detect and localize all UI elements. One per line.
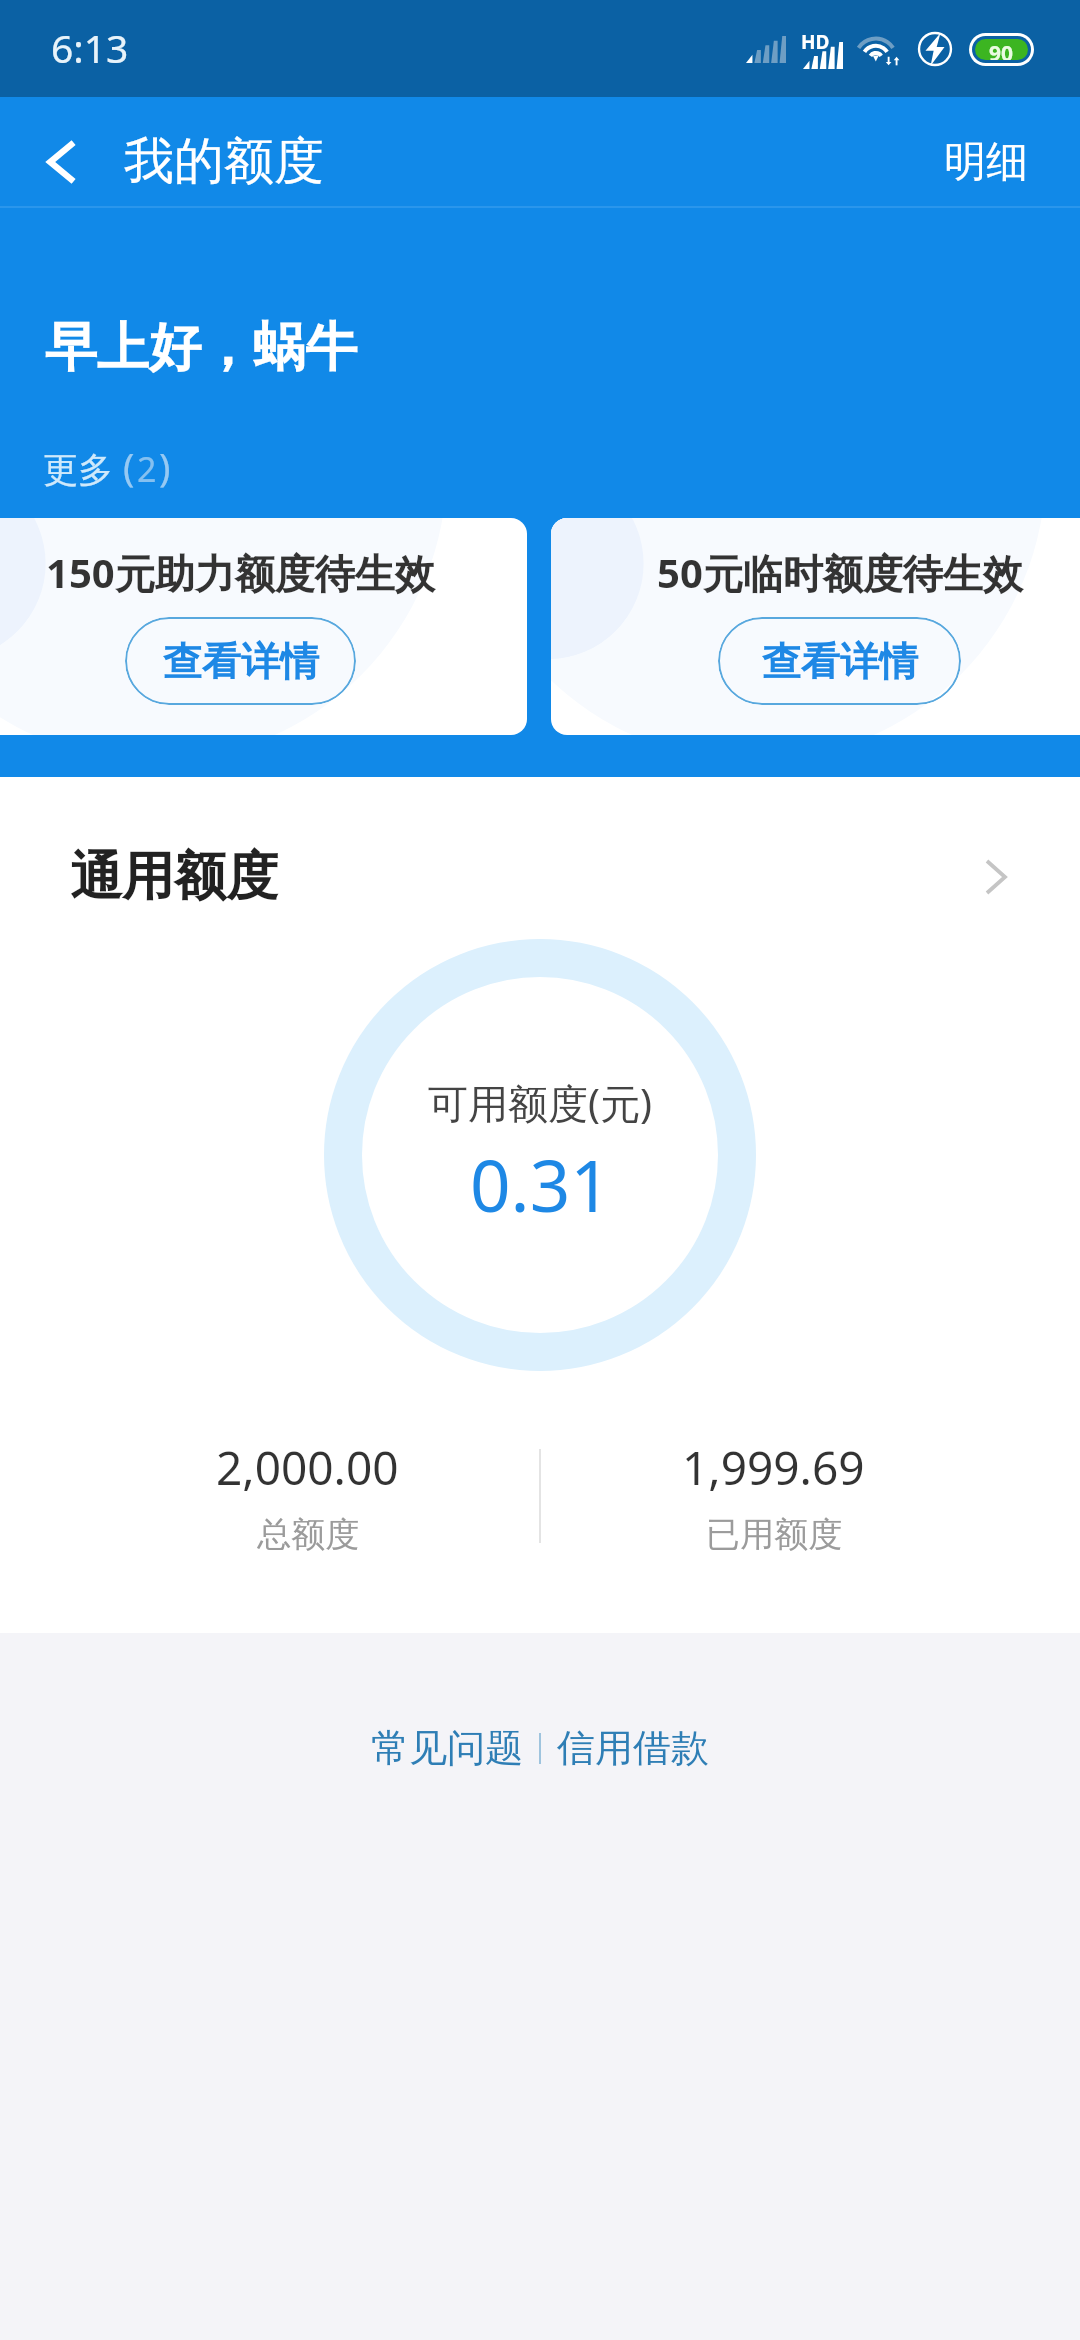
- other: Open general credit details: [975, 857, 1015, 897]
- button[interactable]: 查看详情: [718, 617, 961, 705]
- staticText: 50元临时额度待生效: [657, 545, 1023, 600]
- staticText: 更多: [43, 448, 113, 492]
- staticText: 明细: [944, 136, 1028, 189]
- staticText: 150元助力额度待生效: [46, 545, 435, 600]
- staticText: 早上好，蜗牛: [45, 315, 357, 381]
- staticText: ): [159, 440, 171, 492]
- staticText: 可用额度(元): [428, 1075, 652, 1130]
- staticText: 信用借款: [557, 1724, 709, 1772]
- staticText: 0.31: [470, 1136, 611, 1233]
- staticText: 常见问题: [371, 1724, 523, 1772]
- staticText: 已用额度: [706, 1513, 842, 1556]
- staticText: 2: [137, 446, 157, 492]
- button[interactable]: 明细: [902, 97, 1080, 206]
- staticText: 查看详情: [163, 637, 319, 686]
- button[interactable]: 常见问题: [355, 1710, 539, 1786]
- staticText: 6:13: [51, 21, 129, 74]
- button[interactable]: 50元临时额度待生效: [551, 518, 1080, 735]
- button[interactable]: 信用借款: [541, 1710, 725, 1786]
- staticText: HD: [801, 29, 830, 55]
- staticText: 1,999.69: [682, 1436, 865, 1499]
- staticText: (: [123, 440, 135, 492]
- button[interactable]: 通用额度: [0, 844, 1080, 910]
- button[interactable]: Back: [0, 97, 344, 206]
- staticText: 我的额度: [124, 130, 324, 193]
- staticText: 总额度: [257, 1513, 359, 1556]
- staticText: 通用额度: [70, 844, 278, 910]
- button[interactable]: 150元助力额度待生效: [0, 518, 527, 735]
- staticText: 90: [989, 39, 1014, 60]
- staticText: 查看详情: [762, 637, 918, 686]
- button[interactable]: 更多: [43, 440, 171, 492]
- staticText: 2,000.00: [216, 1436, 399, 1499]
- other: Back: [46, 140, 76, 184]
- button[interactable]: 查看详情: [125, 617, 356, 705]
